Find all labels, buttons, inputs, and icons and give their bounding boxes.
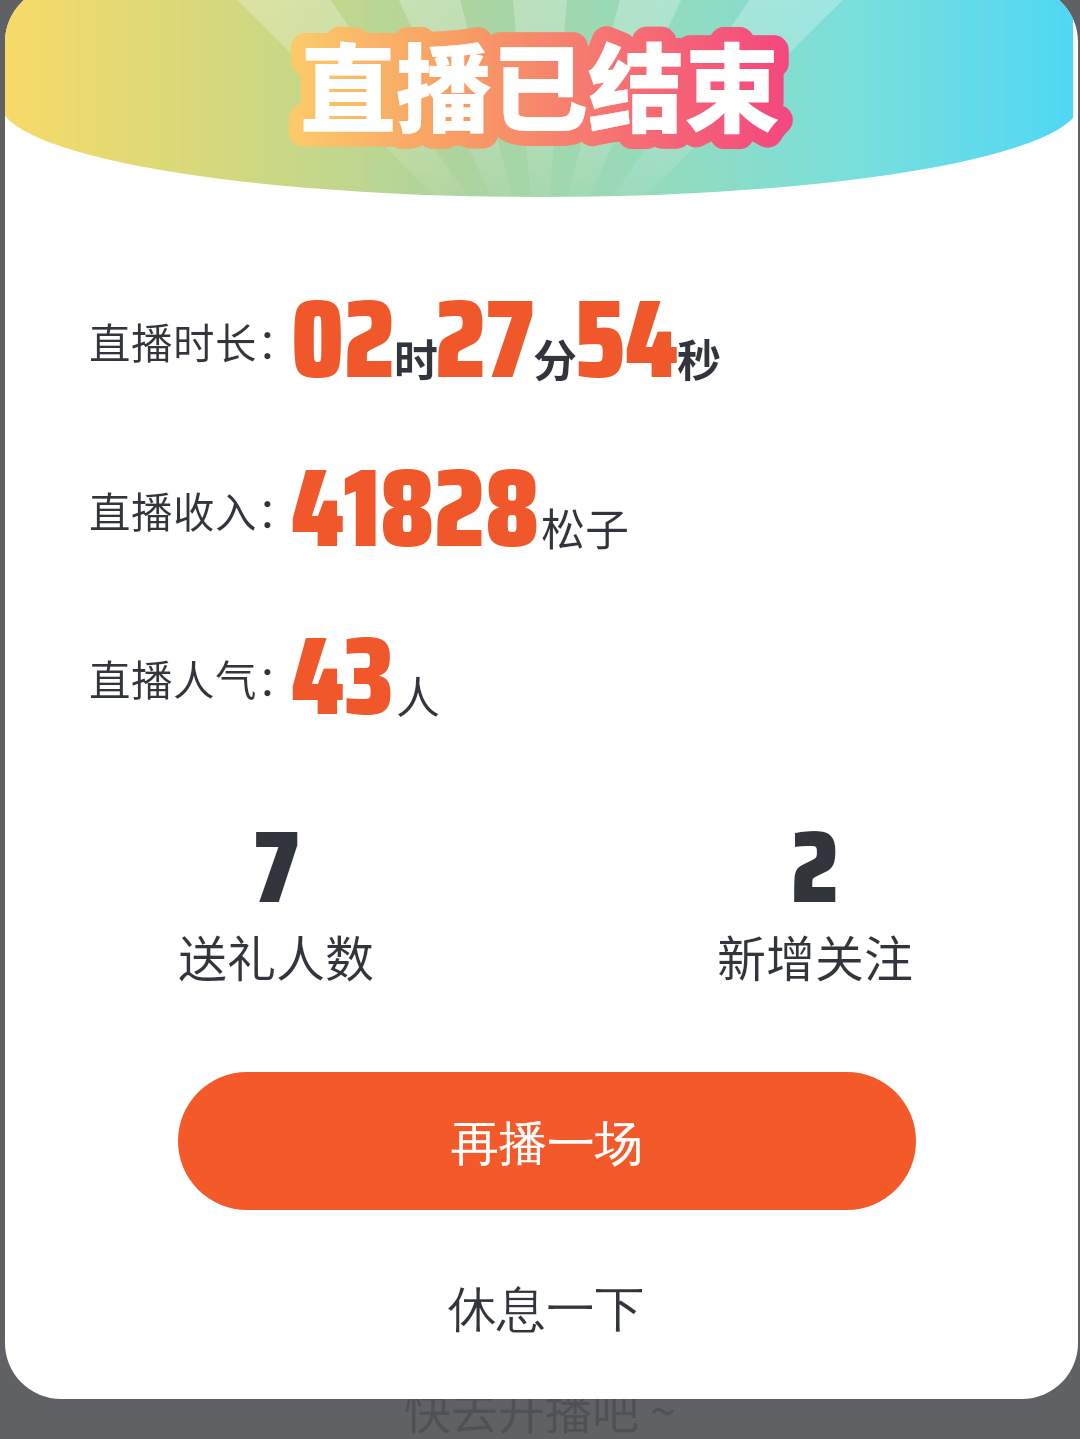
button[interactable]: 休息一下	[390, 1256, 690, 1352]
staticText: 休息一下	[448, 1279, 644, 1341]
staticText: 再播一场	[451, 1114, 643, 1174]
button[interactable]: 再播一场	[178, 1072, 916, 1210]
